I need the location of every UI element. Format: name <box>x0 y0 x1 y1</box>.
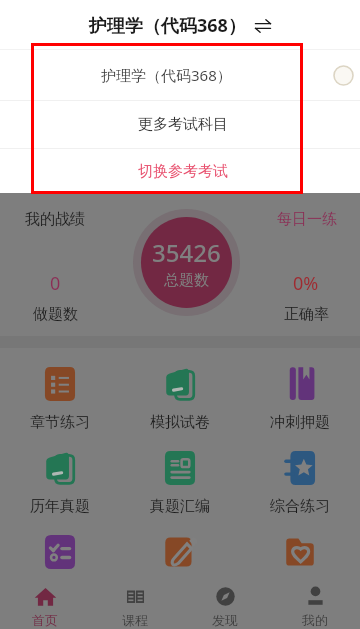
button[interactable]: 0 <box>20 271 90 324</box>
button[interactable]: 课程 <box>90 578 180 629</box>
button[interactable]: 章节练习 <box>0 348 120 432</box>
button[interactable]: 综合练习 <box>240 432 360 516</box>
button[interactable]: 我的 <box>270 578 360 629</box>
staticText: 首页 <box>32 612 58 628</box>
button[interactable]: 0% <box>271 271 341 324</box>
staticText: 课程 <box>122 612 148 628</box>
button[interactable]: 切换科目 <box>254 17 272 35</box>
staticText: 35426 <box>152 236 221 269</box>
button[interactable]: 历年真题 <box>0 432 120 516</box>
staticText: 0 <box>50 271 61 296</box>
staticText: 章节练习 <box>30 413 90 432</box>
staticText: 正确率 <box>284 305 329 324</box>
staticText: 历年真题 <box>30 497 90 516</box>
button[interactable]: 真题汇编 <box>120 432 240 516</box>
staticText: 我的 <box>302 612 328 628</box>
button[interactable]: 首页 <box>0 578 90 629</box>
button[interactable]: 冲刺押题 <box>240 348 360 432</box>
button[interactable]: 发现 <box>180 578 270 629</box>
staticText: 我的战绩 <box>25 210 85 229</box>
staticText: 模拟试卷 <box>150 413 210 432</box>
staticText: 真题汇编 <box>150 497 210 516</box>
staticText: 0% <box>293 271 319 296</box>
staticText: 总题数 <box>164 271 209 290</box>
staticText: 我的收藏 <box>270 581 330 600</box>
button[interactable]: 错题本 <box>120 516 240 600</box>
staticText: 发现 <box>212 612 238 628</box>
staticText: 冲刺押题 <box>270 413 330 432</box>
button[interactable]: 切换参考考试 <box>0 149 360 193</box>
staticText: 切换参考考试 <box>138 162 228 181</box>
button[interactable]: 收藏试题 <box>0 516 120 600</box>
button[interactable]: 模拟试卷 <box>120 348 240 432</box>
staticText: 每日一练 <box>277 210 337 229</box>
staticText: 做题数 <box>33 305 78 324</box>
button[interactable]: 更多考试科目 <box>0 101 360 148</box>
button[interactable]: 我的收藏 <box>240 516 360 600</box>
button[interactable]: 护理学（代码368） <box>0 50 360 100</box>
staticText: 综合练习 <box>270 497 330 516</box>
staticText: 护理学（代码368） <box>101 65 232 85</box>
staticText: 更多考试科目 <box>138 115 228 134</box>
staticText: 收藏试题 <box>30 581 90 600</box>
staticText: 护理学（代码368） <box>89 13 246 38</box>
